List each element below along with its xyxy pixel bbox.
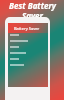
staticText: Saver <box>22 10 43 21</box>
staticText: Battery Saver <box>14 26 40 31</box>
staticText: Best Battery <box>9 0 56 11</box>
